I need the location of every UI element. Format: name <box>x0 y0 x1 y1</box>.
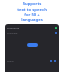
staticText: Pronounce <box>7 26 20 29</box>
button[interactable] <box>27 43 38 47</box>
button[interactable]: Pronounce <box>7 25 57 30</box>
button[interactable]: Translate <box>7 30 57 35</box>
staticText: Speak <box>7 59 14 62</box>
staticText: Supports text to speech for 50 + languag… <box>17 1 47 22</box>
staticText: Translate <box>7 31 18 34</box>
